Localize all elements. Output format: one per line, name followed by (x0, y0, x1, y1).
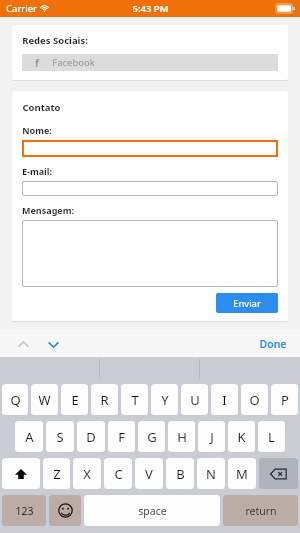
staticText: Z (53, 465, 61, 483)
button[interactable]: K (228, 421, 255, 452)
staticText: Mensagem: (22, 204, 74, 216)
button[interactable]: U (181, 384, 208, 415)
button[interactable]: Done (256, 333, 290, 355)
staticText: S (56, 428, 64, 446)
staticText: Q (10, 391, 21, 409)
staticText: 5:43 PM (132, 2, 169, 15)
staticText: Facebook (52, 56, 95, 69)
button[interactable]: E (61, 384, 88, 415)
staticText: T (131, 391, 139, 409)
staticText: K (237, 428, 246, 446)
staticText: A (25, 428, 34, 446)
button[interactable]: 123 (2, 495, 46, 526)
staticText: Contato (22, 101, 61, 114)
staticText: V (145, 465, 153, 483)
button[interactable]: C (104, 458, 132, 489)
staticText: I (222, 391, 227, 409)
staticText: O (249, 391, 260, 409)
staticText: H (177, 428, 187, 446)
staticText: N (206, 465, 216, 483)
button[interactable]: Next field (42, 333, 64, 355)
staticText: Carrier (6, 2, 37, 15)
staticText: U (190, 391, 200, 409)
button[interactable]: Previous field (12, 333, 34, 355)
button[interactable] (22, 140, 278, 157)
button[interactable]: Shift (2, 458, 40, 489)
button[interactable]: O (241, 384, 268, 415)
button[interactable]: f (22, 54, 278, 71)
button[interactable]: Y (151, 384, 178, 415)
staticText: E-mail: (22, 165, 52, 177)
staticText: Enviar (233, 297, 261, 310)
button[interactable]: return (223, 495, 298, 526)
staticText: W (38, 391, 51, 409)
button[interactable] (22, 181, 278, 196)
staticText: space (138, 504, 167, 518)
staticText: G (147, 428, 157, 446)
staticText: M (236, 465, 248, 483)
staticText: E (71, 391, 79, 409)
staticText: B (176, 465, 185, 483)
staticText: F (118, 428, 125, 446)
staticText: J (210, 428, 214, 446)
button[interactable]: M (228, 458, 256, 489)
button[interactable]: X (73, 458, 101, 489)
staticText: Done (259, 337, 287, 351)
button[interactable]: Emoji (49, 495, 81, 526)
button[interactable]: V (135, 458, 163, 489)
button[interactable]: R (91, 384, 118, 415)
staticText: L (268, 428, 275, 446)
staticText: Redes Sociais: (22, 34, 88, 47)
button[interactable] (22, 220, 278, 287)
staticText: P (281, 391, 289, 409)
staticText: X (83, 465, 91, 483)
button[interactable]: H (168, 421, 195, 452)
staticText: D (86, 428, 96, 446)
staticText: C (114, 465, 123, 483)
button[interactable]: Z (43, 458, 70, 489)
staticText: f (35, 56, 39, 70)
button[interactable]: F (108, 421, 135, 452)
button[interactable]: W (31, 384, 58, 415)
staticText: R (100, 391, 109, 409)
button[interactable]: N (197, 458, 225, 489)
button[interactable]: space (84, 495, 220, 526)
button[interactable]: P (271, 384, 298, 415)
button[interactable]: B (166, 458, 194, 489)
staticText: Y (161, 391, 169, 409)
button[interactable]: D (77, 421, 105, 452)
button[interactable]: Q (2, 384, 28, 415)
button[interactable]: T (121, 384, 148, 415)
staticText: Nome: (22, 124, 52, 136)
button[interactable]: Backspace (259, 458, 298, 489)
staticText: 123 (15, 504, 34, 518)
button[interactable]: G (138, 421, 165, 452)
button[interactable]: I (211, 384, 238, 415)
button[interactable]: L (258, 421, 285, 452)
staticText: return (245, 504, 277, 518)
button[interactable]: S (46, 421, 74, 452)
button[interactable]: A (15, 421, 43, 452)
button[interactable]: Enviar (216, 293, 278, 313)
button[interactable]: J (198, 421, 225, 452)
